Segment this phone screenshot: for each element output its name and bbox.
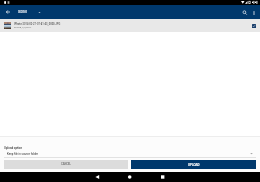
- button[interactable]: Search: [239, 7, 250, 18]
- button[interactable]: SDM: [18, 5, 41, 19]
- button[interactable]: Back: [2, 6, 13, 17]
- staticText: CANCEL: [61, 163, 71, 166]
- button[interactable]: IPhoto-2014-02-27-07-41-43_0000.JPG: [0, 19, 260, 32]
- staticText: Keep file in source folder: [7, 152, 39, 155]
- staticText: 364 KB, 1/2/2017: [14, 26, 32, 29]
- button[interactable]: UPLOAD: [131, 160, 256, 169]
- staticText: IPhoto-2014-02-27-07-41-43_0000.JPG: [14, 23, 61, 26]
- button[interactable]: CANCEL: [4, 160, 128, 169]
- staticText: Upload option: [4, 146, 23, 149]
- staticText: SDM: [18, 9, 27, 14]
- button[interactable]: Selected: [249, 21, 258, 30]
- button[interactable]: More options: [249, 8, 258, 17]
- button[interactable]: Keep file in source folder: [0, 150, 260, 157]
- staticText: UPLOAD: [188, 163, 200, 167]
